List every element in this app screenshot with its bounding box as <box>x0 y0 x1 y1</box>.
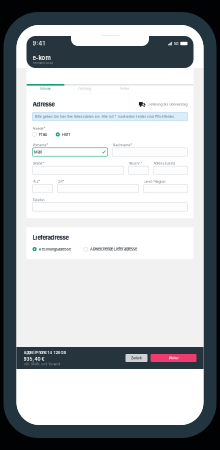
staticText: Telekom Shop <box>32 61 53 65</box>
staticText: PLZ* <box>32 180 40 184</box>
staticText: Adresse <box>32 101 54 108</box>
staticText: Vorname* <box>32 143 48 147</box>
staticText: Hausnr.* <box>128 161 142 165</box>
staticText: 5G <box>174 41 179 46</box>
button[interactable]: Zurück <box>125 354 147 362</box>
staticText: Nachname* <box>112 143 132 147</box>
button[interactable]: Weiter <box>150 354 196 362</box>
staticText: Zahlung <box>78 87 91 90</box>
staticText: Anrede* <box>32 126 45 130</box>
button[interactable]: Abweichende Lieferadresse <box>84 246 137 252</box>
staticText: Rechnungsadresse <box>39 247 71 251</box>
button[interactable]: Frau <box>32 131 47 137</box>
button[interactable]: Herr <box>56 131 71 137</box>
staticText: Zurück <box>131 356 142 360</box>
staticText: e-kom <box>32 54 50 61</box>
staticText: Frau <box>39 132 47 137</box>
staticText: Lieferadresse <box>32 234 68 241</box>
staticText: Telefon <box>32 198 44 202</box>
staticText: Bitte geben Sie hier Ihre Adressdaten ei… <box>35 115 175 119</box>
staticText: 9:41 <box>32 40 44 47</box>
staticText: Ort* <box>57 180 64 184</box>
staticText: Adresse <box>40 87 51 90</box>
staticText: Abweichende Lieferadresse <box>90 247 137 251</box>
staticText: 935,40 € <box>23 356 44 362</box>
staticText: inkl. MwSt. und Versand <box>23 363 60 366</box>
button[interactable]: Rechnungsadresse <box>32 246 71 252</box>
staticText: Max <box>34 150 42 154</box>
staticText: Lieferung bis Donnerstag <box>147 102 187 106</box>
staticText: Land / Region <box>143 180 165 184</box>
staticText: Prüfen <box>119 87 129 90</box>
staticText: Adresszusatz <box>153 161 175 165</box>
staticText: Weiter <box>168 356 178 360</box>
staticText: Straße* <box>32 161 44 165</box>
staticText: Herr <box>62 132 71 137</box>
staticText: Apple iPhone 14 128GB <box>23 350 66 355</box>
